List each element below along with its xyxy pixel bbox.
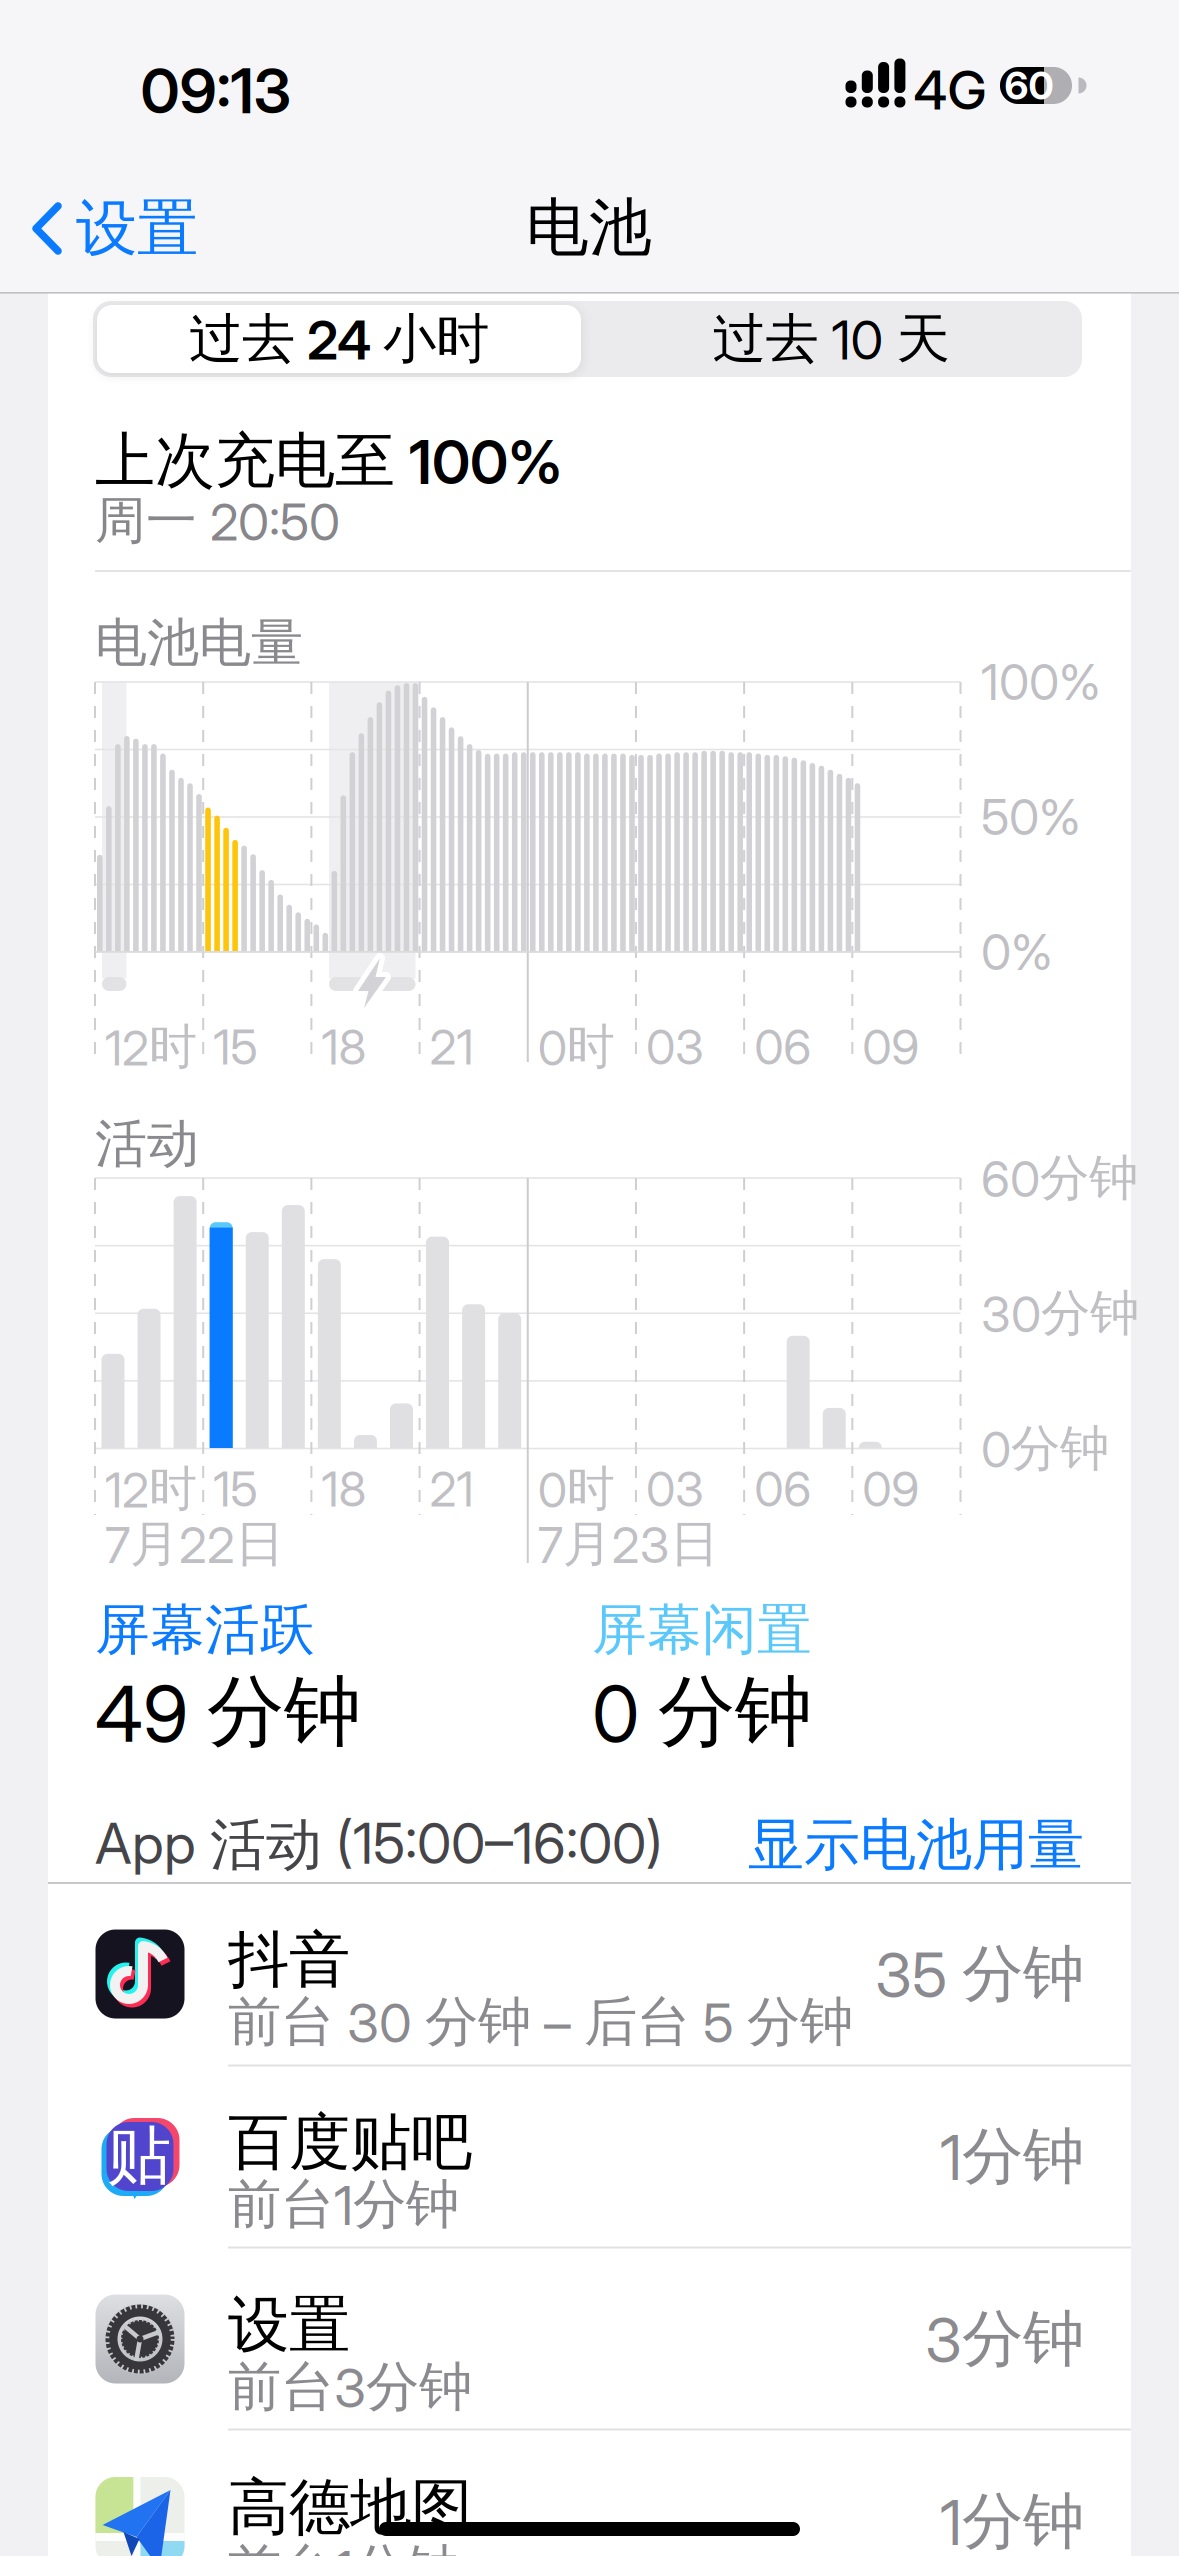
staticText: 0分钟 <box>981 1418 1109 1479</box>
staticText: 03 <box>646 1461 704 1517</box>
staticText: 贴 <box>107 2117 171 2195</box>
staticText: 4G <box>913 58 986 121</box>
staticText: 显示电池用量 <box>748 1811 1084 1879</box>
button[interactable]: 抖音 <box>48 1883 1131 2065</box>
staticText: 0时 <box>538 1017 615 1076</box>
staticText: 03 <box>646 1019 704 1075</box>
staticText: 09 <box>862 1461 919 1517</box>
staticText: 屏幕闲置 <box>592 1596 812 1663</box>
staticText: 百度贴吧 <box>228 2105 472 2180</box>
staticText: 49 分钟 <box>95 1664 361 1759</box>
staticText: 100% <box>981 653 1101 711</box>
staticText: 60分钟 <box>981 1148 1138 1208</box>
button[interactable]: 返回设置 <box>25 195 200 262</box>
staticText: 前台 30 分钟 – 后台 5 分钟 <box>228 1989 853 2055</box>
staticText: 09 <box>862 1019 919 1075</box>
staticText: 高德地图 <box>228 2470 472 2545</box>
staticText: 0% <box>981 923 1053 981</box>
staticText: 活动 <box>95 1112 199 1176</box>
staticText: 7月23日 <box>538 1514 719 1574</box>
staticText: 屏幕活跃 <box>95 1596 315 1663</box>
staticText: 过去 24 小时 <box>189 306 489 372</box>
staticText: 35 分钟 <box>875 1936 1084 2012</box>
staticText: 电池电量 <box>95 611 303 675</box>
staticText: 21 <box>430 1019 474 1075</box>
button[interactable]: 显示电池用量 <box>654 1810 1084 1880</box>
button[interactable]: 过去 10 天 <box>581 301 1081 377</box>
staticText: 15 <box>213 1461 258 1517</box>
button[interactable]: 设置 <box>48 2248 1131 2430</box>
staticText: 7月22日 <box>105 1514 284 1574</box>
staticText: 设置 <box>76 191 198 266</box>
staticText: 周一 20:50 <box>95 490 340 552</box>
staticText: 0 分钟 <box>592 1664 812 1759</box>
staticText: 1分钟 <box>940 2119 1084 2194</box>
staticText: 06 <box>754 1461 811 1517</box>
staticText: 1分钟 <box>940 2484 1084 2556</box>
staticText: 09:13 <box>140 55 291 127</box>
staticText: 上次充电至 100% <box>95 424 562 498</box>
staticText: 30分钟 <box>981 1283 1139 1344</box>
button[interactable]: 贴 <box>48 2065 1131 2247</box>
button[interactable]: 过去 24 小时 <box>97 305 581 373</box>
staticText: 0时 <box>538 1459 615 1518</box>
staticText: App 活动 (15:00–16:00) <box>95 1810 663 1879</box>
staticText: 抖音 <box>228 1922 350 1998</box>
staticText: 电池 <box>526 189 652 266</box>
staticText: 21 <box>430 1461 474 1517</box>
staticText: 前台1分钟 <box>228 2172 459 2237</box>
staticText: 50% <box>981 788 1081 846</box>
staticText: 12时 <box>105 1459 197 1518</box>
staticText: 设置 <box>228 2287 350 2363</box>
staticText: 前台1分钟 <box>228 2537 459 2556</box>
staticText: 3分钟 <box>925 2301 1084 2377</box>
staticText: 60 <box>1004 63 1053 108</box>
staticText: 12时 <box>105 1017 197 1076</box>
staticText: 18 <box>321 1461 366 1517</box>
staticText: 15 <box>213 1019 258 1075</box>
button[interactable]: 高德地图 <box>48 2430 1131 2556</box>
staticText: 06 <box>754 1019 811 1075</box>
staticText: 18 <box>321 1019 366 1075</box>
staticText: 前台3分钟 <box>228 2354 472 2420</box>
staticText: 过去 10 天 <box>712 306 949 372</box>
